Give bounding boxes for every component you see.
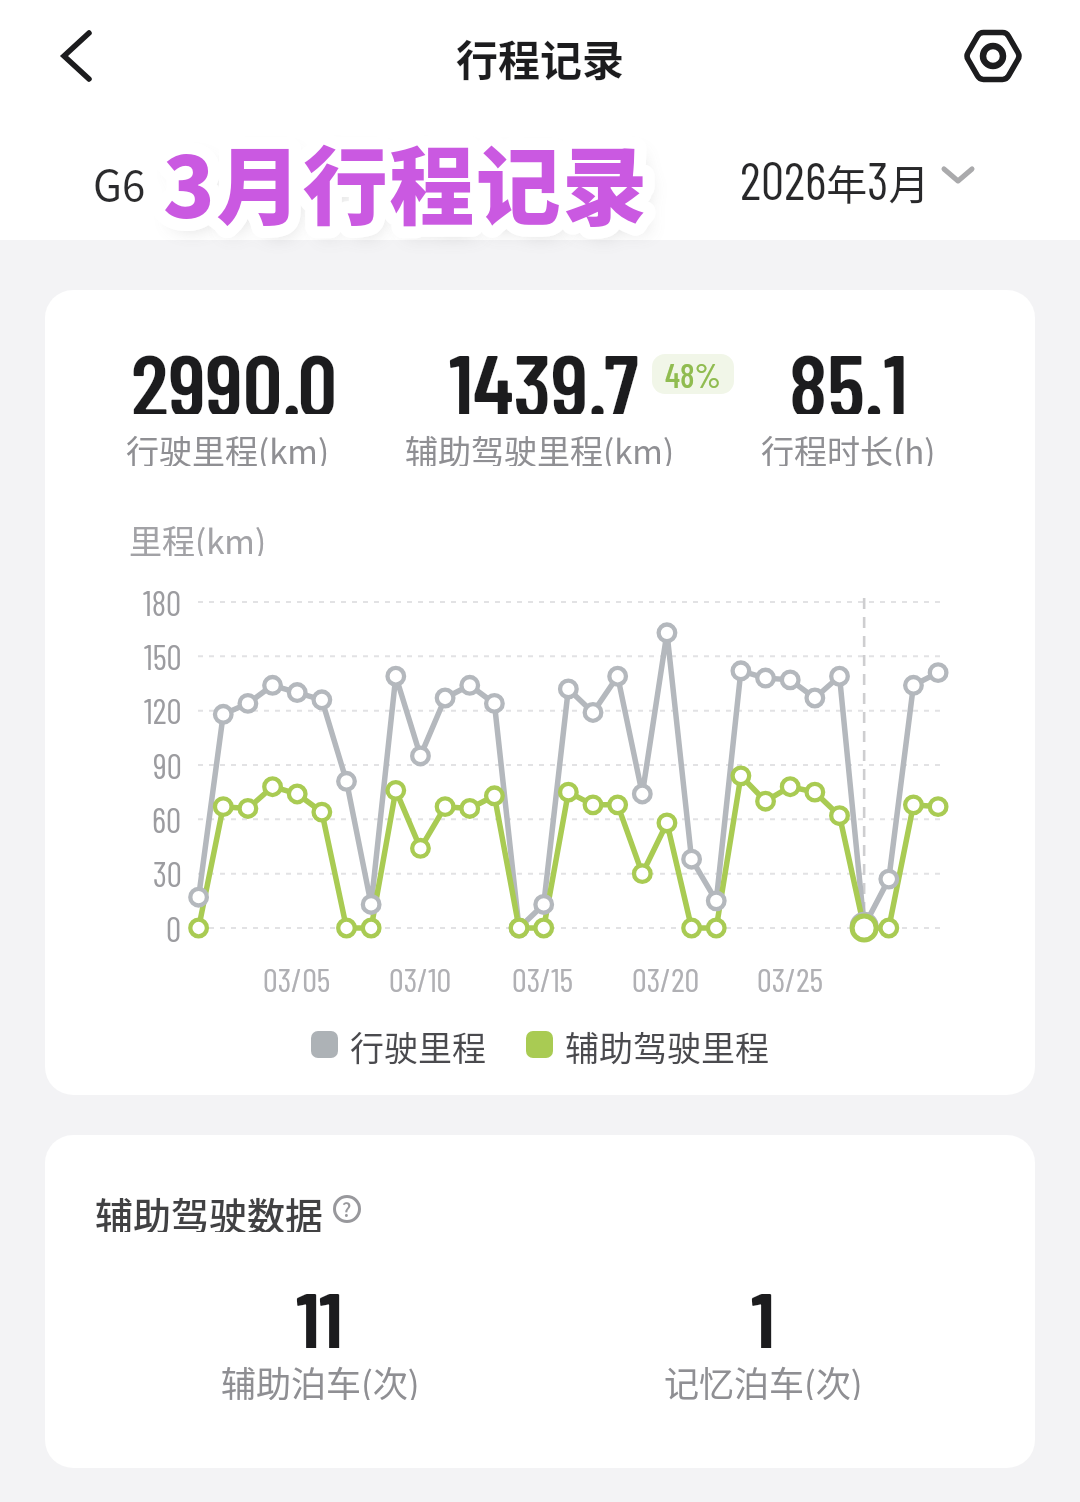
staticText: 2990.0 — [131, 330, 338, 414]
staticText: 03/25 — [757, 959, 823, 999]
staticText: 1 — [751, 1268, 776, 1348]
staticText: 03/20 — [632, 959, 700, 999]
staticText: 180 — [143, 582, 182, 622]
staticText: 120 — [144, 690, 182, 730]
staticText: 记忆泊车(次) — [664, 1356, 863, 1400]
staticText: 1439.7 — [449, 330, 639, 414]
button[interactable] — [960, 23, 1026, 89]
staticText: 行程时长(h) — [761, 426, 936, 466]
button[interactable] — [40, 30, 110, 84]
staticText: 辅助驾驶里程 — [565, 1022, 769, 1066]
staticText: ? — [342, 1195, 352, 1223]
staticText: 辅助驾驶数据 — [95, 1186, 324, 1232]
staticText: 2026年3月 — [740, 148, 930, 204]
staticText: 03/15 — [512, 959, 574, 999]
staticText: 85.1 — [789, 330, 908, 414]
staticText: 行驶里程 — [350, 1022, 486, 1066]
staticText: 03/05 — [263, 959, 331, 999]
staticText: 30 — [153, 853, 182, 893]
staticText: 3月行程记录 — [163, 119, 649, 242]
staticText: 辅助泊车(次) — [221, 1356, 420, 1400]
staticText: 48% — [665, 354, 721, 394]
button[interactable]: 2026年3月 — [740, 148, 976, 204]
staticText: 里程(km) — [129, 516, 267, 556]
staticText: 辅助驾驶里程(km) — [405, 426, 675, 466]
staticText: 90 — [153, 745, 182, 785]
staticText: 0 — [166, 908, 182, 948]
staticText: G6 — [93, 152, 146, 202]
staticText: 03/10 — [389, 959, 452, 999]
staticText: 60 — [152, 799, 182, 839]
staticText: 11 — [296, 1268, 344, 1348]
staticText: 150 — [144, 636, 182, 676]
button[interactable]: 辅助驾驶数据 — [95, 1186, 362, 1232]
staticText: 3月行程记录 — [163, 119, 649, 242]
staticText: 行程记录 — [456, 27, 625, 88]
staticText: 行驶里程(km) — [126, 426, 330, 466]
